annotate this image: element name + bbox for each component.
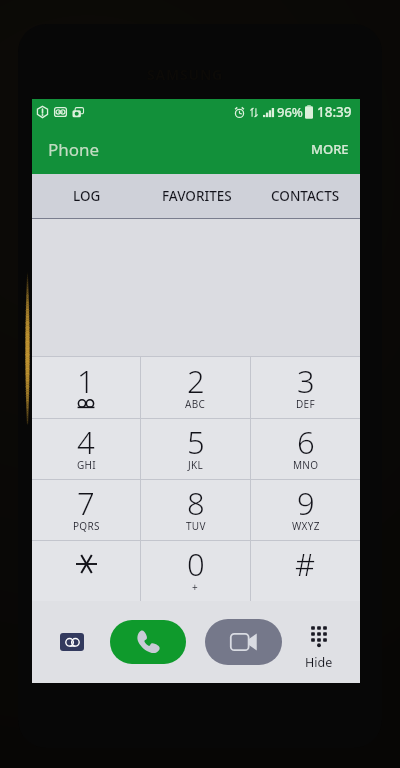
button[interactable]: 0 — [141, 541, 250, 601]
staticText: 4 — [77, 421, 95, 463]
staticText: + — [192, 580, 199, 594]
button[interactable]: 6 — [251, 419, 360, 479]
staticText: 6 — [297, 421, 315, 463]
staticText: TUV — [186, 519, 206, 533]
button[interactable]: 3 — [251, 357, 360, 418]
staticText: # — [295, 543, 316, 585]
staticText: 5 — [187, 421, 205, 463]
button[interactable]: Video call — [205, 619, 282, 665]
staticText: JKL — [188, 458, 204, 472]
staticText: ABC — [185, 397, 206, 411]
staticText: 0 — [187, 543, 205, 585]
staticText: LOG — [73, 187, 101, 205]
button[interactable]: FAVORITES — [142, 174, 251, 218]
button[interactable]: 4 — [32, 419, 140, 479]
button[interactable]: 7 — [32, 480, 140, 540]
staticText: 3 — [297, 360, 315, 402]
button[interactable]: Voicemail — [54, 625, 90, 659]
staticText: FAVORITES — [162, 187, 232, 205]
staticText: DEF — [296, 397, 315, 411]
button[interactable] — [32, 541, 140, 601]
button[interactable]: 9 — [251, 480, 360, 540]
staticText: PQRS — [73, 519, 100, 533]
staticText: Phone — [48, 138, 100, 161]
button[interactable]: 8 — [141, 480, 250, 540]
staticText: 7 — [77, 482, 95, 524]
staticText: MNO — [293, 458, 319, 472]
staticText: GHI — [77, 458, 96, 472]
staticText: 18:39 — [317, 103, 352, 121]
staticText: 9 — [297, 482, 315, 524]
staticText: WXYZ — [292, 519, 320, 533]
button[interactable]: CONTACTS — [251, 174, 360, 218]
staticText: CONTACTS — [271, 187, 340, 205]
button[interactable]: 2 — [141, 357, 250, 418]
button[interactable]: MORE — [300, 126, 360, 172]
staticText: 96% — [277, 103, 303, 121]
button[interactable]: LOG — [32, 174, 142, 218]
button[interactable]: 1 — [32, 357, 140, 418]
button[interactable]: 5 — [141, 419, 250, 479]
button[interactable]: # — [251, 541, 360, 601]
staticText: 1 — [77, 360, 95, 402]
button[interactable]: Hide — [296, 617, 342, 675]
button[interactable]: Call — [110, 620, 186, 664]
staticText: Hide — [305, 654, 333, 671]
staticText: MORE — [311, 140, 349, 158]
staticText: 8 — [187, 482, 205, 524]
staticText: 2 — [187, 360, 205, 402]
